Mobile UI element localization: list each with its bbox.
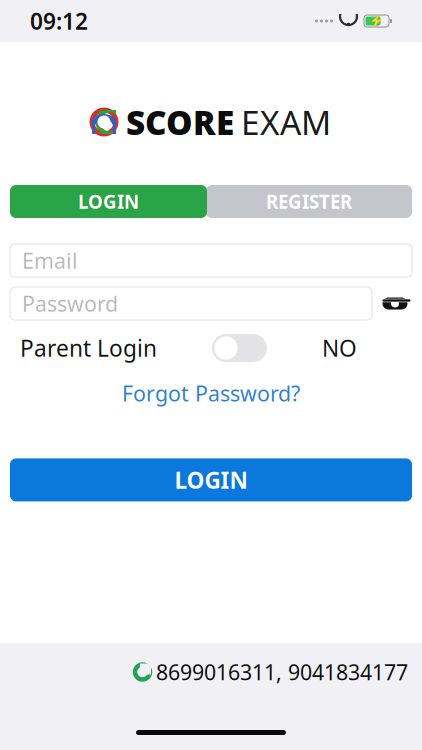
button[interactable]: REGISTER: [206, 185, 412, 218]
button[interactable]: LOGIN: [10, 185, 207, 218]
staticText: Forgot Password?: [122, 379, 300, 407]
staticText: NO: [322, 333, 357, 363]
staticText: Password: [22, 289, 118, 318]
staticText: ⚡: [369, 14, 384, 28]
staticText: LOGIN: [78, 189, 139, 214]
staticText: EXAM: [241, 100, 331, 144]
button[interactable]: Show password: [378, 287, 412, 320]
staticText: Email: [22, 246, 78, 275]
staticText: LOGIN: [174, 465, 247, 495]
staticText: REGISTER: [266, 189, 352, 214]
button[interactable]: 8699016311, 9041834177: [134, 658, 408, 686]
staticText: 09:12: [30, 6, 88, 36]
button[interactable]: Parent Login toggle: [212, 334, 267, 362]
button[interactable]: Forgot Password?: [112, 375, 310, 411]
staticText: Parent Login: [20, 333, 157, 363]
staticText: SCORE: [126, 100, 234, 144]
button[interactable]: LOGIN: [10, 458, 412, 501]
staticText: 8699016311, 9041834177: [156, 658, 408, 686]
